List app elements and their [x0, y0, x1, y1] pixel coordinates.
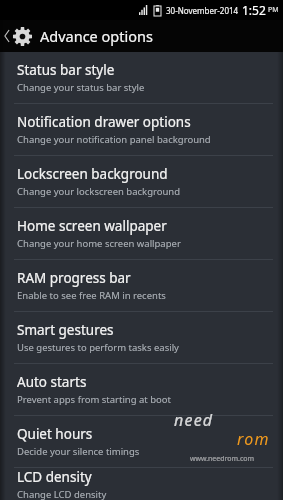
staticText: Change LCD density	[17, 488, 107, 500]
staticText: Status bar style	[17, 61, 115, 79]
button[interactable]: Status bar style	[0, 52, 283, 103]
staticText: rom	[237, 428, 270, 450]
staticText: RAM progress bar	[17, 269, 131, 287]
button[interactable]: RAM progress bar	[0, 260, 283, 311]
staticText: Notification drawer options	[17, 113, 191, 131]
button[interactable]: Back to settings	[0, 20, 283, 52]
staticText: PM	[268, 5, 279, 15]
button[interactable]: Notification drawer options	[0, 104, 283, 155]
staticText: Change your status bar style	[17, 81, 145, 94]
staticText: LCD density	[17, 468, 92, 486]
staticText: 1:52	[242, 2, 266, 18]
staticText: Change your notification panel backgroun…	[17, 133, 211, 146]
staticText: www.needrom.com	[174, 454, 270, 464]
staticText: Change your lockscreen background	[17, 185, 181, 198]
staticText: Use gestures to perform tasks easily	[17, 341, 179, 354]
staticText: Advance options	[40, 26, 153, 46]
staticText: Auto starts	[17, 373, 87, 391]
button[interactable]: Home screen wallpaper	[0, 208, 283, 259]
button[interactable]: LCD density	[0, 468, 283, 500]
staticText: Lockscreen background	[17, 165, 168, 183]
button[interactable]: Quiet hours	[0, 416, 283, 467]
staticText: Decide your silence timings	[17, 445, 140, 458]
staticText: Home screen wallpaper	[17, 217, 167, 235]
button[interactable]: Smart gestures	[0, 312, 283, 363]
button[interactable]: Auto starts	[0, 364, 283, 415]
staticText: Enable to see free RAM in recents	[17, 289, 166, 302]
staticText: 30-November-2014	[166, 5, 239, 16]
staticText: Smart gestures	[17, 321, 114, 339]
button[interactable]: Lockscreen background	[0, 156, 283, 207]
staticText: need	[174, 409, 214, 431]
staticText: Prevent apps from starting at boot	[17, 393, 172, 406]
staticText: Quiet hours	[17, 425, 93, 443]
staticText: Change your home screen wallpaper	[17, 237, 181, 250]
